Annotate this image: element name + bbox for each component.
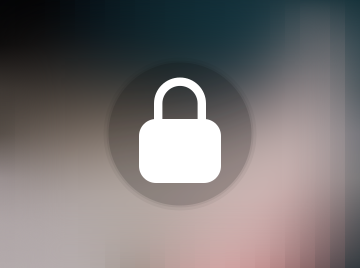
button[interactable]: Locked bbox=[0, 0, 360, 268]
